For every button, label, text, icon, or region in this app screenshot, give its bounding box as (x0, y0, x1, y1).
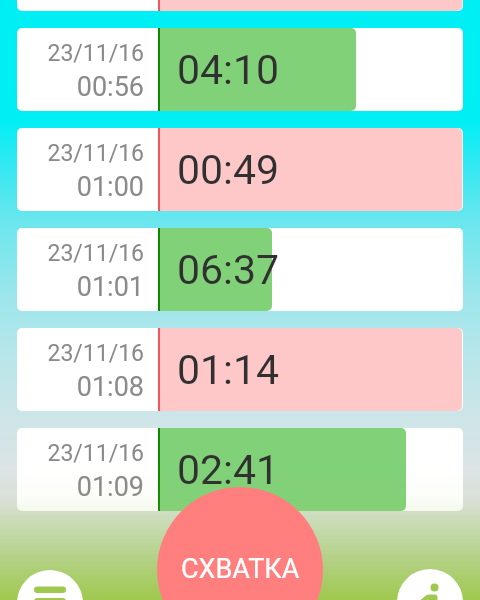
staticText: 00:56 (17, 71, 144, 103)
staticText: 01:01 (17, 271, 144, 303)
button[interactable]: 23/11/16 (17, 128, 463, 211)
button[interactable]: History list (17, 570, 83, 600)
staticText: 23/11/16 (17, 40, 144, 67)
staticText: 23/11/16 (17, 340, 144, 367)
staticText: 01:00 (17, 171, 144, 203)
button[interactable]: 23/11/16 (17, 28, 463, 111)
staticText: 06:37 (177, 246, 280, 294)
staticText: 23/11/16 (17, 440, 144, 467)
staticText: 04:10 (177, 46, 280, 94)
button[interactable]: 23/11/16 (17, 228, 463, 311)
staticText: 01:14 (177, 346, 280, 394)
button[interactable]: Profile (397, 569, 463, 600)
staticText: 00:49 (177, 146, 280, 194)
button[interactable]: 23/11/16 (17, 428, 463, 511)
staticText: 23/11/16 (17, 240, 144, 267)
button[interactable]: 23/11/16 (17, 328, 463, 411)
staticText: 01:08 (17, 371, 144, 403)
button[interactable]: 23/11/16 (17, 0, 463, 11)
staticText: 23/11/16 (17, 140, 144, 167)
staticText: 01:09 (17, 471, 144, 503)
button[interactable]: СХВАТКА (157, 487, 323, 600)
staticText: 02:41 (177, 446, 280, 494)
staticText: СХВАТКА (181, 553, 300, 585)
